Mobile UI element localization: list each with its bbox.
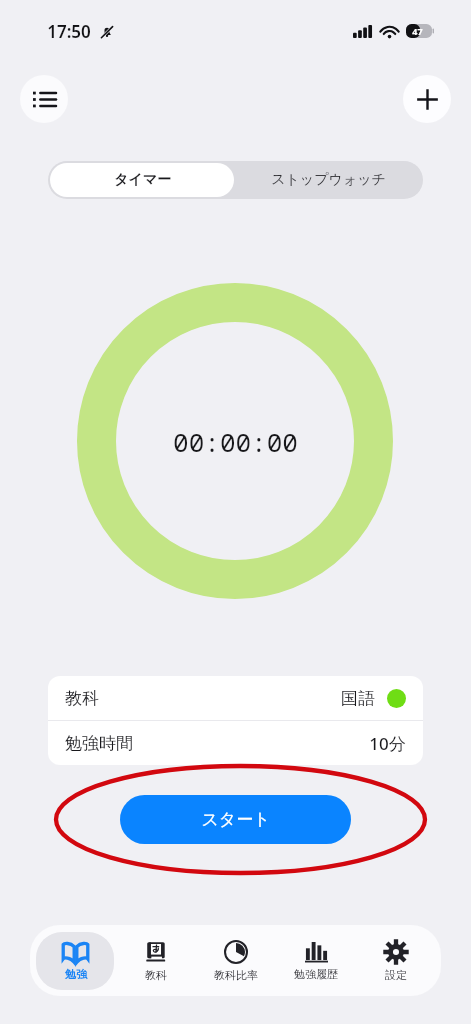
staticText: 00:00:00 bbox=[173, 424, 298, 459]
staticText: 教科比率 bbox=[214, 968, 258, 982]
button[interactable]: 教科 bbox=[48, 676, 423, 720]
staticText: 教科 bbox=[65, 688, 99, 709]
button[interactable]: 設定 bbox=[357, 932, 435, 990]
staticText: スタート bbox=[201, 809, 271, 830]
button[interactable]: List bbox=[20, 75, 68, 123]
button[interactable]: 教科 bbox=[116, 932, 194, 990]
staticText: 勉強時間 bbox=[65, 733, 133, 754]
staticText: 設定 bbox=[385, 968, 407, 982]
staticText: 47 bbox=[412, 25, 423, 37]
button[interactable]: ストップウォッチ bbox=[236, 163, 421, 197]
button[interactable]: 勉強履歴 bbox=[277, 932, 355, 990]
staticText: ストップウォッチ bbox=[271, 171, 386, 189]
staticText: 17:50 bbox=[47, 20, 91, 43]
button[interactable]: 教科比率 bbox=[197, 932, 275, 990]
button[interactable]: タイマー bbox=[50, 163, 234, 197]
button[interactable]: スタート bbox=[120, 795, 351, 844]
staticText: タイマー bbox=[114, 171, 171, 189]
staticText: 勉強履歴 bbox=[294, 967, 338, 981]
button[interactable]: 勉強時間 bbox=[48, 721, 423, 765]
staticText: 勉強 bbox=[65, 967, 87, 981]
staticText: 国語 bbox=[341, 688, 375, 709]
staticText: 教科 bbox=[145, 968, 167, 982]
button[interactable]: 勉強 bbox=[36, 932, 114, 990]
button[interactable]: Add bbox=[403, 75, 451, 123]
staticText: 10分 bbox=[369, 732, 406, 755]
